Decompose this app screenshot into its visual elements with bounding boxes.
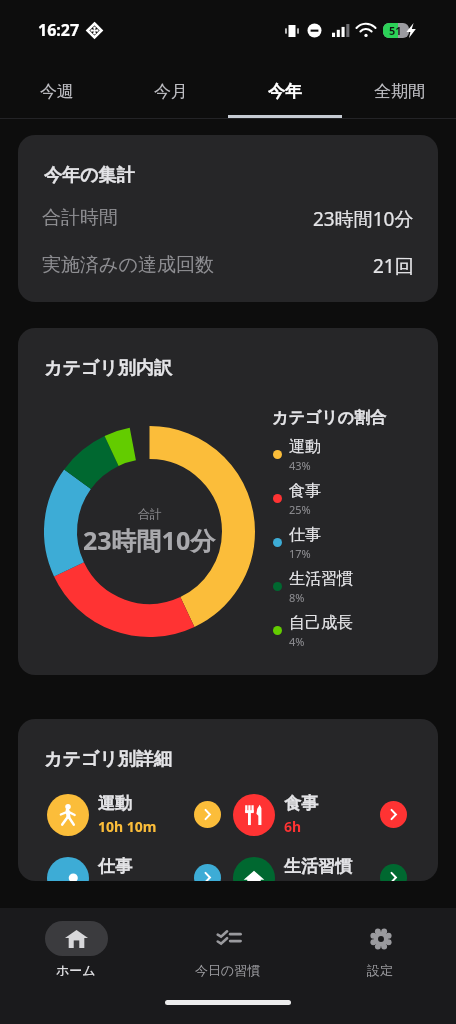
button[interactable]: 運動 [47,793,221,836]
other: 今日の習慣 [217,931,241,946]
other: 設定 [370,928,392,950]
staticText: 実施済みの達成回数 [42,253,214,277]
button[interactable]: 生活習慣 [233,856,407,881]
staticText: 今日の習慣 [195,962,261,978]
staticText: 10h 10m [98,817,157,836]
staticText: 6h [284,817,302,836]
button[interactable]: 設定 [304,908,456,978]
staticText: 生活習慣 [284,856,352,877]
button[interactable]: 今日の習慣 [152,908,304,978]
staticText: カテゴリ別詳細 [44,748,172,771]
staticText: 51 [389,23,402,38]
staticText: 生活習慣 [289,569,353,589]
button[interactable]: ホーム [0,908,152,978]
staticText: 食事 [284,793,318,814]
staticText: 自己成長 [289,613,353,633]
staticText: 運動 [289,437,321,457]
staticText: 23時間10分 [83,523,216,557]
other: ホーム [65,930,88,948]
staticText: 16:27 [38,19,80,41]
staticText: カテゴリの割合 [272,408,386,428]
button[interactable]: 全期間 [342,60,456,119]
staticText: 25% [289,502,311,517]
staticText: 設定 [367,962,393,978]
staticText: 23時間10分 [313,206,414,232]
staticText: 合計 [138,506,162,521]
staticText: 17% [289,546,311,561]
staticText: 8% [289,590,305,605]
staticText: 運動 [98,793,132,814]
staticText: 合計時間 [42,206,118,230]
staticText: 今年 [268,81,302,102]
button[interactable]: 今年 [228,60,342,119]
staticText: 21回 [373,253,414,279]
staticText: ホーム [56,962,96,978]
staticText: 今週 [40,81,74,102]
staticText: 43% [289,458,311,473]
staticText: 今月 [154,81,188,102]
staticText: 4% [289,634,305,649]
staticText: 仕事 [98,856,132,877]
button[interactable]: 仕事 [47,856,221,881]
staticText: 今年の集計 [44,164,135,187]
staticText: カテゴリ別内訳 [44,357,172,380]
button[interactable]: 今月 [114,60,228,119]
staticText: 全期間 [374,81,425,102]
button[interactable]: 今週 [0,60,114,119]
button[interactable]: 食事 [233,793,407,836]
staticText: 仕事 [289,525,321,545]
staticText: 食事 [289,481,321,501]
